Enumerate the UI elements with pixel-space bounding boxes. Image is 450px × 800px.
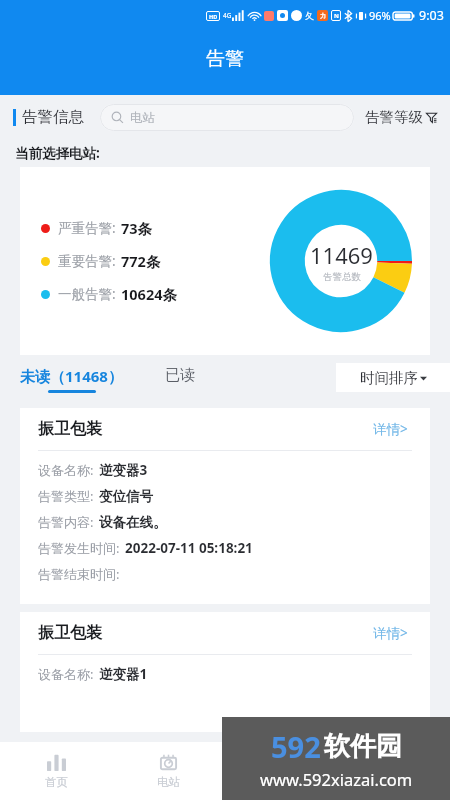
staticText: 4G: [223, 11, 232, 20]
staticText: 592: [271, 727, 321, 766]
staticText: 当前选择电站:: [15, 144, 100, 162]
staticText: 告警: [206, 47, 244, 71]
staticText: 告警总数: [323, 271, 361, 283]
staticText: 详情>: [373, 624, 408, 642]
staticText: 振卫包装: [38, 419, 102, 439]
staticText: 告警结束时间:: [38, 565, 120, 583]
staticText: 力: [320, 12, 326, 20]
staticText: 设备在线。: [99, 514, 167, 531]
staticText: 10624条: [121, 284, 177, 304]
button[interactable]: 振卫包装: [20, 408, 430, 604]
button[interactable]: 详情>: [369, 416, 412, 442]
button[interactable]: 电站: [112, 742, 224, 800]
staticText: 2022-07-11 05:18:21: [125, 539, 253, 557]
staticText: 772条: [121, 251, 161, 271]
staticText: 一般告警:: [58, 285, 116, 303]
staticText: 未读（11468）: [20, 366, 123, 386]
button[interactable]: 未读（11468）: [0, 363, 123, 393]
staticText: 设备名称:: [38, 461, 94, 479]
staticText: N: [334, 12, 339, 20]
staticText: 设备名称:: [38, 665, 94, 683]
staticText: 变位信号: [99, 488, 153, 505]
staticText: 严重告警:: [58, 219, 116, 237]
staticText: 电站: [157, 775, 180, 789]
staticText: 告警发生时间:: [38, 539, 120, 557]
staticText: 夂: [305, 10, 314, 21]
staticText: 软件园: [324, 730, 402, 763]
staticText: HD: [209, 13, 218, 20]
staticText: 首页: [45, 775, 68, 789]
staticText: www.592xiazai.com: [260, 768, 413, 790]
staticText: 逆变器3: [99, 461, 148, 479]
button[interactable]: 告警等级: [365, 104, 437, 130]
staticText: 73条: [121, 218, 153, 238]
staticText: 电站: [130, 110, 155, 126]
staticText: 96%: [369, 8, 391, 23]
staticText: 详情>: [373, 420, 408, 438]
button[interactable]: 详情>: [369, 620, 412, 646]
staticText: 告警等级: [365, 108, 423, 126]
staticText: 告警信息: [22, 107, 84, 127]
staticText: 振卫包装: [38, 623, 102, 643]
staticText: 9:03: [419, 7, 444, 24]
button[interactable]: 已读: [165, 363, 195, 385]
staticText: 逆变器1: [99, 665, 148, 683]
button[interactable]: 电站: [100, 104, 354, 131]
staticText: 已读: [165, 366, 195, 385]
staticText: 11469: [310, 240, 373, 270]
staticText: 告警类型:: [38, 487, 94, 505]
button[interactable]: 时间排序: [336, 363, 450, 392]
staticText: 告警内容:: [38, 513, 94, 531]
button[interactable]: 首页: [0, 742, 112, 800]
staticText: 时间排序: [360, 369, 418, 387]
button[interactable]: 振卫包装: [20, 612, 430, 732]
staticText: 重要告警:: [58, 252, 116, 270]
